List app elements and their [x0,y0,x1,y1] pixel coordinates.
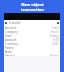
staticText: Food [51,30,59,34]
staticText: Never [50,54,59,56]
staticText: 0.00 [53,38,59,42]
button[interactable]: Currency [5,42,59,46]
staticText: Category [5,30,18,34]
staticText: Amount [5,38,17,42]
staticText: Today [50,34,59,38]
staticText: Repeat [5,54,15,56]
staticText: Payee [5,46,14,50]
button[interactable]: Date [5,34,59,38]
button[interactable]: Account [5,26,59,30]
button[interactable]: Amount [5,38,59,42]
staticText: Date [5,34,12,38]
staticText: Currency [5,42,18,46]
staticText: Account [5,26,17,30]
staticText: USD [52,42,59,46]
button[interactable]: Category icon [5,20,59,26]
staticText: New object [21,2,44,7]
button[interactable]: Repeat [5,54,59,56]
staticText: transaction [21,7,44,12]
staticText: Transfer [9,21,21,25]
button[interactable]: Category [5,30,59,34]
staticText: Note [5,50,12,54]
button[interactable]: Payee [5,46,59,50]
staticText: Cash [52,26,59,30]
button[interactable]: Note [5,50,59,54]
